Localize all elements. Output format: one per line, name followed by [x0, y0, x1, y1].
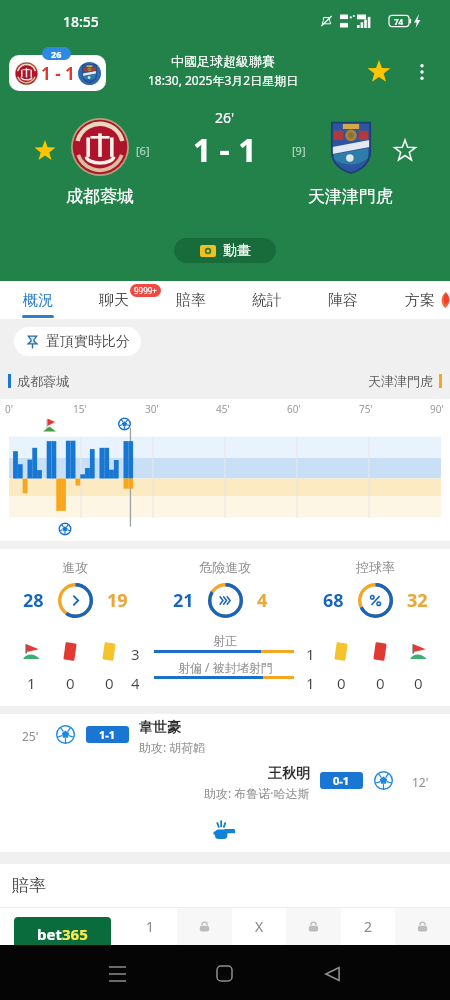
staticText: 置頂實時比分	[46, 333, 130, 351]
staticText: 25'	[22, 728, 39, 744]
staticText: bet	[37, 924, 62, 944]
staticText: 1	[306, 673, 315, 693]
staticText: X	[255, 917, 264, 936]
staticText: 0	[105, 673, 114, 693]
staticText: 1-1	[99, 727, 116, 742]
staticText: 18:55	[63, 12, 99, 31]
staticText: 1 - 1	[193, 128, 257, 172]
staticText: 射正	[213, 633, 237, 648]
button[interactable]: More options	[405, 55, 439, 89]
staticText: 0	[337, 673, 346, 693]
staticText: 1 - 1	[41, 62, 75, 85]
button[interactable]: Favourite match	[362, 55, 396, 89]
staticText: 賠率	[176, 291, 206, 310]
staticText: 統計	[252, 291, 282, 310]
staticText: 28	[23, 588, 44, 613]
staticText: 成都蓉城	[66, 186, 134, 207]
staticText: 68	[323, 588, 344, 613]
staticText: 26'	[215, 108, 235, 127]
staticText: 15'	[73, 402, 87, 416]
staticText: 21	[173, 588, 194, 613]
button[interactable]: Favourite home team	[30, 136, 60, 166]
staticText: 天津津門虎	[368, 373, 433, 389]
staticText: 4	[257, 588, 268, 613]
staticText: 0	[414, 673, 423, 693]
staticText: 0	[376, 673, 385, 693]
staticText: 60'	[287, 402, 301, 416]
staticText: 中國足球超級聯賽	[171, 53, 275, 69]
staticText: 45'	[216, 402, 230, 416]
staticText: 0'	[5, 402, 13, 416]
staticText: [6]	[136, 143, 150, 158]
staticText: 賠率	[12, 875, 46, 896]
staticText: 助攻: 布鲁诺·哈达斯	[204, 785, 310, 801]
staticText: 2	[364, 917, 373, 936]
button[interactable]: Favourite away team	[390, 136, 420, 166]
staticText: 90'	[430, 402, 444, 416]
button[interactable]: 聊天	[76, 281, 152, 319]
staticText: 365	[62, 924, 88, 944]
staticText: 韋世豪	[139, 719, 181, 737]
staticText: 18:30, 2025年3月2日星期日	[148, 72, 299, 88]
button[interactable]: bet	[14, 917, 111, 950]
staticText: 0	[66, 673, 75, 693]
staticText: 概況	[23, 291, 53, 310]
staticText: 聊天	[99, 291, 129, 310]
staticText: 王秋明	[268, 765, 310, 783]
staticText: 控球率	[356, 559, 395, 575]
button[interactable]: 統計	[229, 281, 305, 319]
button[interactable]: 動畫	[174, 238, 276, 263]
button[interactable]: 2	[341, 908, 450, 945]
staticText: 3	[131, 644, 140, 664]
staticText: 危險進攻	[199, 559, 251, 575]
button[interactable]: 方案	[382, 281, 450, 319]
button[interactable]: Recents	[97, 953, 138, 994]
button[interactable]: X	[232, 908, 341, 945]
staticText: 74	[394, 16, 404, 27]
staticText: 1	[146, 917, 155, 936]
staticText: 天津津門虎	[308, 186, 393, 207]
staticText: 動畫	[223, 242, 251, 260]
staticText: 射偏 / 被封堵射門	[178, 659, 273, 675]
staticText: 進攻	[62, 559, 88, 575]
staticText: 4	[131, 673, 140, 693]
staticText: 19	[107, 588, 128, 613]
button[interactable]: Home	[204, 953, 245, 994]
button[interactable]: 1 - 1	[9, 55, 106, 91]
staticText: 1	[27, 673, 36, 693]
staticText: 成都蓉城	[17, 373, 69, 389]
staticText: 30'	[145, 402, 159, 416]
staticText: 助攻: 胡荷韜	[139, 739, 206, 755]
button[interactable]: 置頂實時比分	[14, 327, 141, 356]
staticText: 32	[407, 588, 428, 613]
button[interactable]: 1	[123, 908, 232, 945]
button[interactable]: 陣容	[305, 281, 381, 319]
button[interactable]: Back	[312, 953, 353, 994]
staticText: 陣容	[328, 291, 358, 310]
staticText: 1	[306, 644, 315, 664]
staticText: [9]	[292, 143, 306, 158]
button[interactable]: 賠率	[153, 281, 229, 319]
staticText: 0-1	[333, 773, 350, 788]
button[interactable]: 概況	[0, 281, 76, 319]
staticText: 75'	[359, 402, 373, 416]
staticText: 方案	[405, 291, 435, 310]
staticText: 9999+	[134, 285, 157, 296]
staticText: 12'	[412, 774, 429, 790]
staticText: 26	[51, 48, 62, 60]
